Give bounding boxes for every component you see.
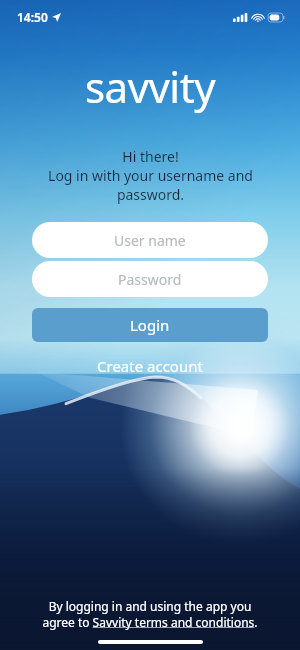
button[interactable]: Login [32, 308, 268, 342]
button[interactable]: By logging in and using the app you agre… [0, 598, 300, 630]
staticText: By logging in and using the app you agre… [42, 598, 258, 630]
staticText: Create account [97, 356, 203, 376]
staticText: savvity [85, 58, 216, 115]
button[interactable]: Password [32, 261, 268, 297]
button[interactable]: Create account [85, 353, 215, 379]
staticText: Login [130, 315, 170, 335]
staticText: Hi there! Log in with your username and … [48, 147, 253, 204]
other: Home indicator [98, 640, 203, 644]
button[interactable]: User name [32, 222, 268, 258]
staticText: 14:50 [17, 9, 48, 25]
staticText: User name [114, 231, 186, 250]
staticText: Password [118, 270, 182, 289]
